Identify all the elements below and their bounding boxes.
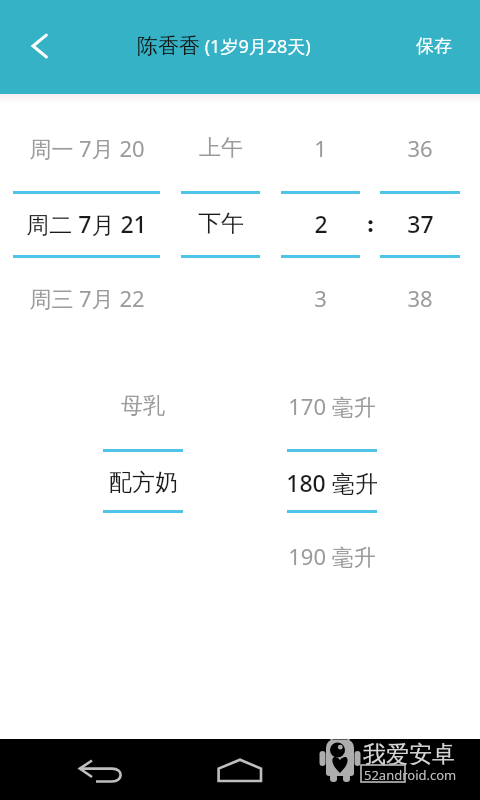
button[interactable]: 周一 7月 20 (13, 118, 160, 318)
staticText: 周二 7月 21 (26, 208, 147, 239)
staticText: 上午 (199, 134, 243, 162)
staticText: 我爱安卓 (363, 740, 455, 769)
staticText: 陈香香 (1岁9月28天) (137, 33, 311, 59)
staticText: 170 毫升 (288, 391, 376, 421)
staticText: 190 毫升 (288, 541, 376, 571)
staticText: 3 (314, 283, 327, 313)
staticText: 保存 (416, 35, 452, 58)
button[interactable]: 36 (380, 118, 460, 318)
staticText: 周一 7月 20 (29, 133, 145, 163)
staticText: 180 毫升 (286, 467, 378, 498)
staticText: 38 (407, 283, 433, 313)
button[interactable]: 母乳 (83, 376, 203, 566)
staticText: 37 (407, 208, 434, 239)
button[interactable]: 1 (281, 118, 360, 318)
staticText: 周三 7月 22 (29, 283, 145, 313)
staticText: 1 (314, 133, 327, 163)
button[interactable]: Back (15, 22, 63, 70)
button[interactable]: 保存 (403, 22, 465, 70)
button[interactable]: Home (210, 752, 270, 792)
staticText: 下午 (198, 209, 244, 238)
staticText: 配方奶 (109, 468, 178, 497)
button[interactable]: Back (72, 752, 128, 792)
staticText: 2 (314, 208, 328, 239)
staticText: 母乳 (121, 392, 165, 420)
staticText: 52android.com (364, 766, 457, 784)
staticText: 36 (407, 133, 433, 163)
button[interactable]: 170 毫升 (267, 376, 397, 586)
button[interactable]: 上午 (181, 118, 260, 318)
